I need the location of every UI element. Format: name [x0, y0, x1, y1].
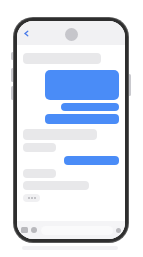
button[interactable] — [45, 70, 119, 100]
button[interactable] — [23, 169, 56, 178]
button[interactable]: Contact avatar — [65, 28, 78, 41]
button[interactable] — [61, 103, 119, 111]
button[interactable]: Send — [116, 228, 121, 233]
button[interactable]: Back — [20, 27, 32, 39]
button[interactable] — [45, 114, 119, 124]
button[interactable]: Gallery — [31, 227, 37, 233]
button[interactable] — [23, 143, 56, 152]
button[interactable]: Camera — [21, 227, 28, 233]
button[interactable] — [64, 156, 119, 165]
